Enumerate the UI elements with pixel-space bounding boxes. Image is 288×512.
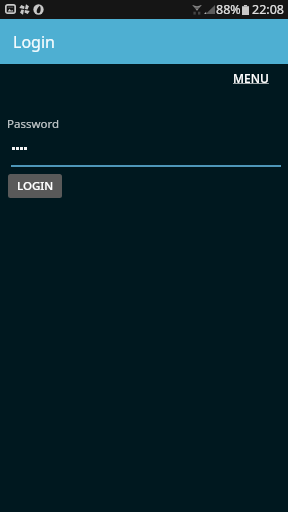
staticText: 88%	[216, 1, 241, 18]
button[interactable]: MENU	[225, 64, 277, 92]
button[interactable]	[11, 139, 281, 167]
staticText: Login	[13, 31, 55, 53]
staticText: LOGIN	[17, 178, 54, 194]
staticText: Password	[7, 116, 60, 132]
button[interactable]: LOGIN	[8, 174, 62, 198]
other: Signal	[204, 5, 215, 14]
staticText: 22:08	[252, 1, 284, 18]
other: Wi-Fi	[192, 4, 202, 15]
staticText: MENU	[233, 70, 269, 86]
